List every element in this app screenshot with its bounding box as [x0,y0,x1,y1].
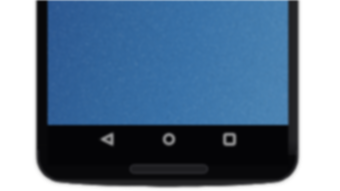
button[interactable]: Home [148,125,190,153]
button[interactable]: Back [86,125,128,153]
button[interactable]: Recent apps [209,125,251,153]
